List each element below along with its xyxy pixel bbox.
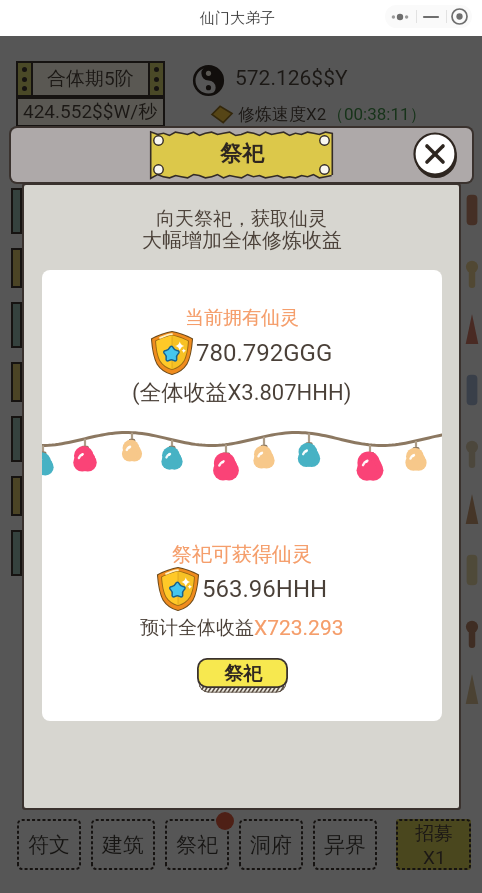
button[interactable]: Close bbox=[412, 132, 458, 178]
staticText: 合体期5阶 bbox=[47, 67, 134, 91]
button[interactable]: 祭祀 bbox=[197, 658, 288, 695]
staticText: (全体收益X3.807HHH) bbox=[132, 379, 352, 407]
staticText: 563.96HHH bbox=[202, 575, 328, 603]
button[interactable]: 祭祀 bbox=[165, 819, 229, 870]
staticText: 当前拥有仙灵 bbox=[185, 306, 299, 330]
staticText: 预计全体收益 bbox=[140, 616, 254, 640]
button[interactable]: Minimize bbox=[417, 5, 445, 28]
staticText: 向天祭祀，获取仙灵 bbox=[156, 207, 327, 231]
staticText: 修炼速度X2 bbox=[238, 104, 327, 125]
staticText: 祭祀 bbox=[220, 140, 264, 168]
staticText: X723.293 bbox=[254, 616, 344, 641]
button[interactable]: More options bbox=[385, 5, 414, 28]
staticText: 招募 bbox=[415, 822, 453, 846]
button[interactable]: 异界 bbox=[313, 819, 377, 870]
button[interactable]: 符文 bbox=[17, 819, 81, 870]
staticText: 祭祀可获得仙灵 bbox=[172, 542, 312, 567]
staticText: 大幅增加全体修炼收益 bbox=[142, 228, 342, 253]
staticText: 祭祀 bbox=[176, 832, 218, 858]
staticText: 572.126$$Y bbox=[235, 66, 348, 91]
staticText: X1 bbox=[423, 846, 446, 868]
staticText: 符文 bbox=[28, 832, 70, 858]
button[interactable]: 洞府 bbox=[239, 819, 303, 870]
button[interactable]: 招募 bbox=[396, 819, 471, 870]
staticText: （00:38:11） bbox=[327, 104, 427, 125]
staticText: 异界 bbox=[324, 832, 366, 858]
staticText: 780.792GGG bbox=[196, 339, 333, 367]
staticText: 祭祀 bbox=[224, 662, 262, 686]
staticText: 建筑 bbox=[102, 832, 144, 858]
staticText: 424.552$$W/秒 bbox=[23, 100, 158, 124]
staticText: 洞府 bbox=[250, 832, 292, 858]
button[interactable]: Close app bbox=[447, 5, 472, 28]
staticText: 仙门大弟子 bbox=[200, 9, 275, 28]
button[interactable]: 建筑 bbox=[91, 819, 155, 870]
